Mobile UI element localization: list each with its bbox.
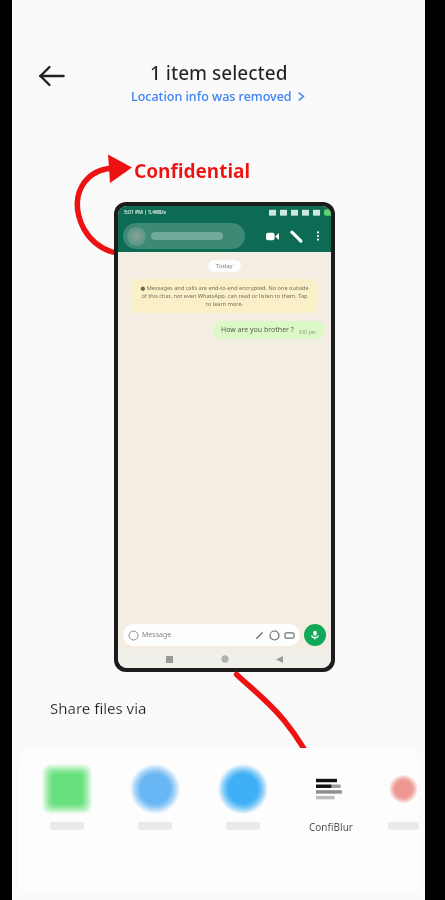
button[interactable]: [40, 762, 94, 830]
button[interactable]: [388, 762, 419, 830]
button[interactable]: More options: [310, 228, 326, 244]
staticText: ConfiBlur: [309, 820, 353, 834]
staticText: Confidential: [134, 158, 251, 184]
staticText: Today: [216, 262, 233, 270]
staticText: Message: [142, 630, 172, 640]
button[interactable]: Voice call: [287, 227, 305, 245]
staticText: How are you brother ?: [221, 325, 294, 335]
button[interactable]: Record voice message: [304, 624, 326, 646]
staticText: 1 item selected: [150, 60, 288, 86]
button[interactable]: [216, 762, 270, 830]
button[interactable]: Back: [34, 58, 70, 94]
button[interactable]: ConfiBlur: [304, 762, 358, 834]
button[interactable]: [123, 223, 245, 249]
staticText: Location info was removed: [131, 88, 292, 105]
button[interactable]: Message: [123, 624, 300, 646]
button[interactable]: Location info was removed: [12, 88, 425, 110]
button[interactable]: [128, 762, 182, 830]
staticText: Share files via: [50, 698, 147, 718]
staticText: 5:01 pm: [299, 329, 317, 335]
button[interactable]: Video call: [263, 227, 281, 245]
staticText: 5:01 PM | 5.4KB/s: [124, 209, 166, 216]
staticText: ● Messages and calls are end-to-end encr…: [139, 284, 310, 308]
